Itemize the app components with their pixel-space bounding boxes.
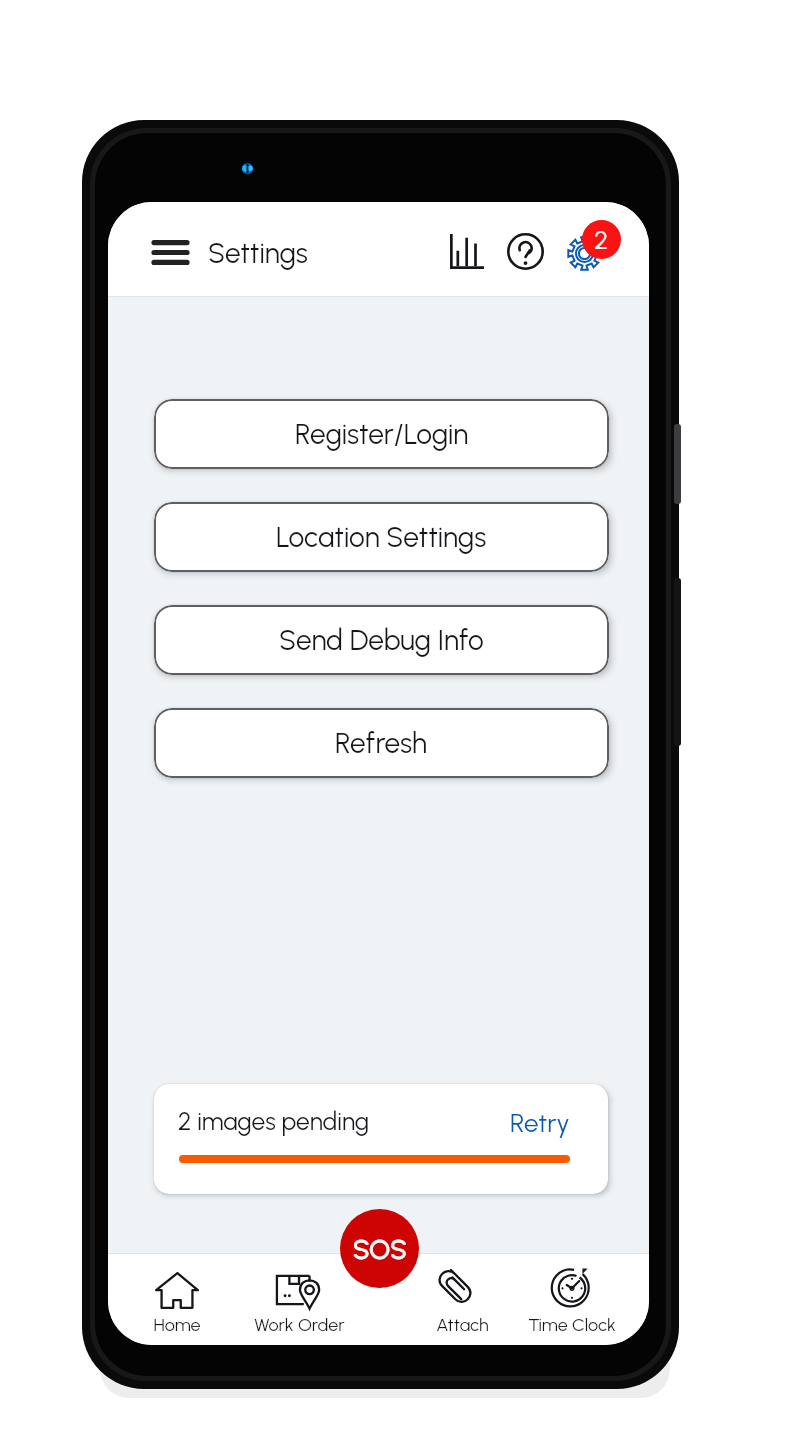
- button[interactable]: Refresh: [154, 708, 609, 778]
- staticText: SOS: [353, 1233, 407, 1265]
- staticText: Attach: [436, 1314, 489, 1336]
- button[interactable]: Retry: [480, 1104, 570, 1141]
- staticText: Refresh: [335, 726, 428, 760]
- button[interactable]: Menu: [140, 222, 200, 282]
- button[interactable]: Register/Login: [154, 399, 609, 469]
- staticText: Work Order: [254, 1314, 345, 1336]
- button[interactable]: Help: [497, 223, 553, 279]
- staticText: Location Settings: [276, 520, 487, 554]
- staticText: Settings: [208, 236, 308, 270]
- button[interactable]: Send Debug Info: [154, 605, 609, 675]
- staticText: 2: [594, 224, 609, 255]
- staticText: Home: [153, 1314, 201, 1336]
- staticText: 2 images pending: [178, 1107, 370, 1136]
- button[interactable]: Home: [117, 1264, 237, 1336]
- staticText: Time Clock: [528, 1314, 616, 1336]
- button[interactable]: Reports: [438, 222, 496, 280]
- button[interactable]: Attach: [402, 1264, 522, 1336]
- staticText: Send Debug Info: [279, 623, 484, 657]
- button[interactable]: Time Clock: [512, 1264, 632, 1336]
- button[interactable]: Settings: [550, 216, 622, 288]
- staticText: Register/Login: [295, 417, 469, 451]
- button[interactable]: Location Settings: [154, 502, 609, 572]
- button[interactable]: SOS: [340, 1209, 419, 1288]
- button[interactable]: Work Order: [239, 1264, 359, 1336]
- staticText: Retry: [510, 1107, 570, 1138]
